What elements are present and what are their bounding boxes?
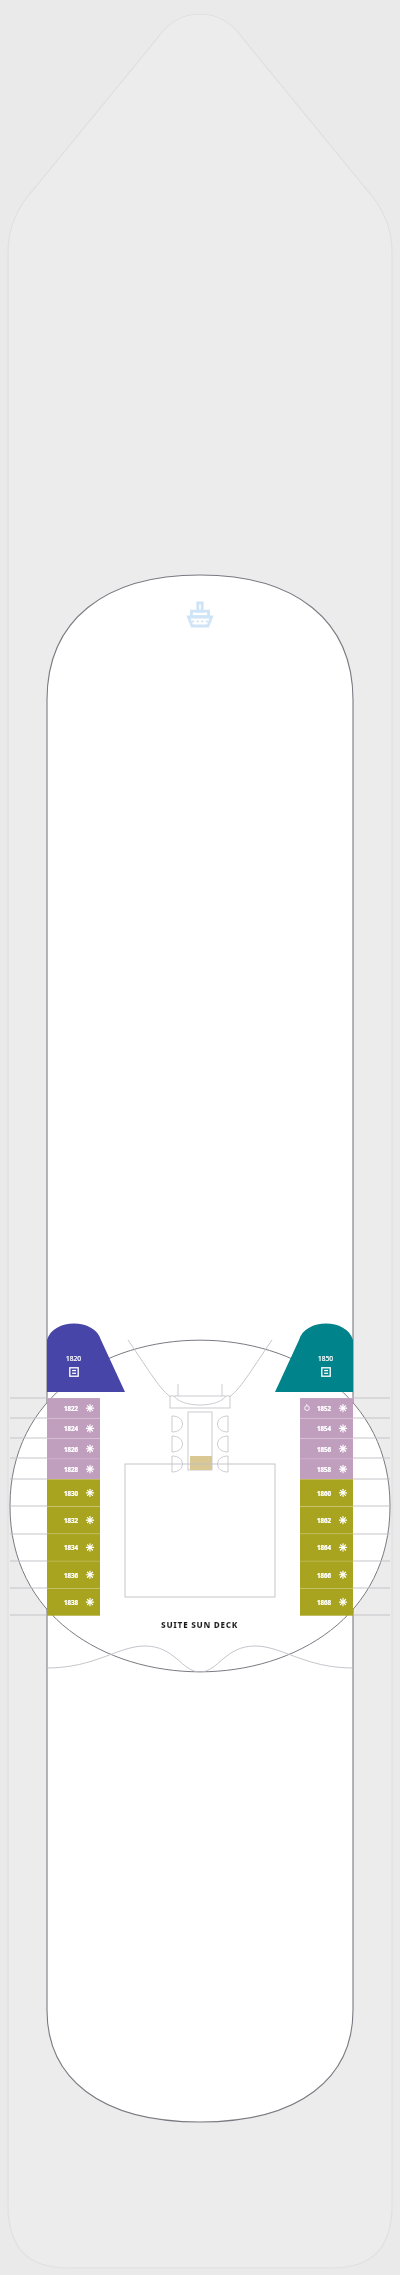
button[interactable]: Deck plan, Suite Sun Deck: [0, 0, 400, 2275]
